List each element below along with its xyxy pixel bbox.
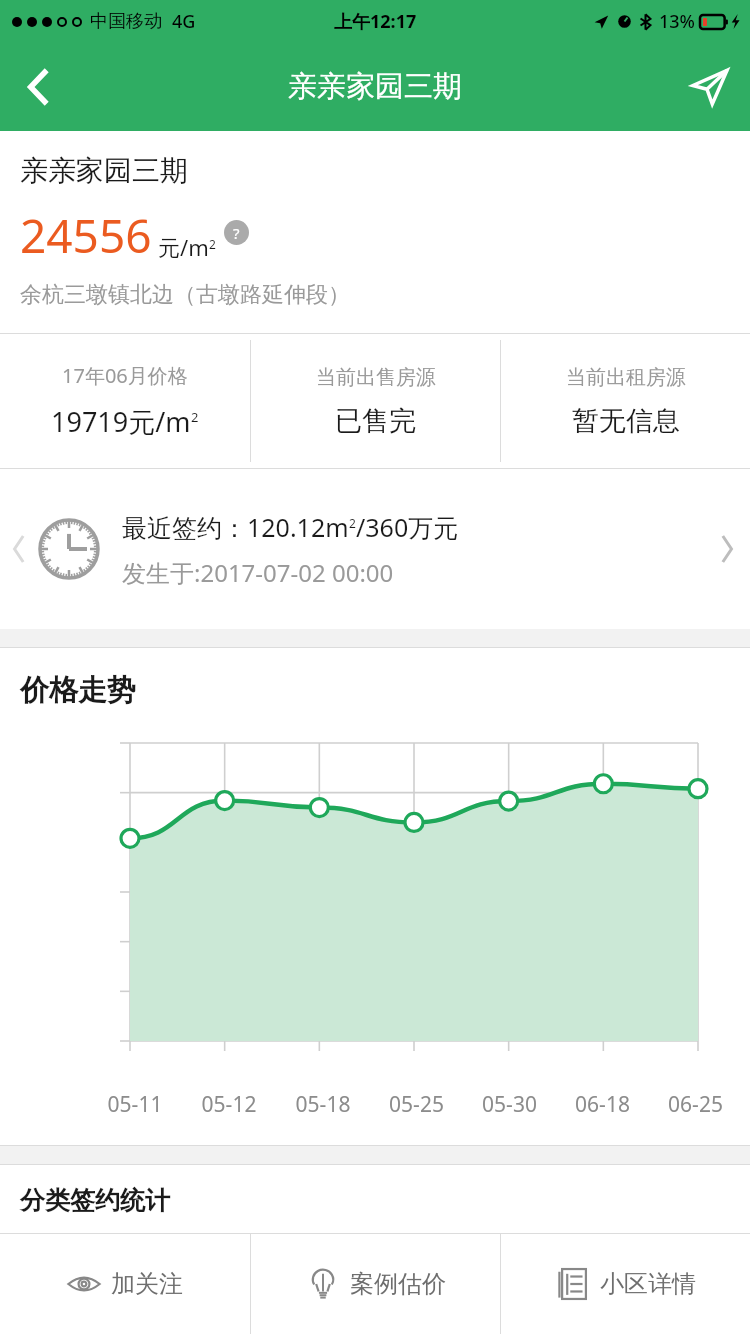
- staticText: ?: [233, 223, 240, 243]
- staticText: 05-12: [182, 1090, 276, 1119]
- staticText: 24556: [20, 204, 152, 267]
- staticText: 中国移动: [90, 10, 162, 33]
- button[interactable]: 最近签约：120.12m: [0, 469, 750, 629]
- staticText: 已售完: [335, 404, 416, 438]
- staticText: 元/m: [158, 232, 209, 262]
- button[interactable]: Price info: [224, 220, 249, 245]
- button[interactable]: 案例估价: [251, 1234, 500, 1334]
- staticText: 发生于:2017-07-02 00:00: [122, 556, 394, 589]
- staticText: 17年06月价格: [62, 362, 188, 389]
- staticText: 05-30: [463, 1090, 556, 1119]
- staticText: 13%: [659, 9, 695, 34]
- staticText: 加关注: [111, 1269, 183, 1299]
- staticText: 价格走势: [20, 672, 136, 709]
- staticText: 最近签约：120.12m: [122, 510, 349, 544]
- staticText: 05-11: [88, 1090, 182, 1119]
- staticText: 当前出租房源: [566, 365, 686, 390]
- staticText: 亲亲家园三期: [20, 153, 188, 188]
- staticText: 2: [209, 236, 216, 252]
- staticText: 05-18: [276, 1090, 370, 1119]
- button[interactable]: 加关注: [0, 1234, 250, 1334]
- staticText: 2: [191, 408, 199, 426]
- staticText: 余杭三墩镇北边（古墩路延伸段）: [20, 281, 350, 309]
- staticText: 06-18: [556, 1090, 649, 1119]
- button[interactable]: 小区详情: [501, 1234, 750, 1334]
- button[interactable]: 当前出售房源: [251, 334, 500, 468]
- button[interactable]: 17年06月价格: [0, 334, 250, 468]
- staticText: 05-25: [370, 1090, 463, 1119]
- staticText: 亲亲家园三期: [288, 68, 462, 105]
- staticText: 当前出售房源: [316, 365, 436, 390]
- button[interactable]: Back: [0, 42, 78, 131]
- staticText: 小区详情: [600, 1269, 696, 1299]
- staticText: 2: [349, 515, 356, 531]
- button[interactable]: 当前出租房源: [501, 334, 750, 468]
- staticText: 06-25: [649, 1090, 742, 1119]
- staticText: 上午12:17: [334, 9, 417, 34]
- staticText: 19719元/m: [51, 403, 191, 440]
- staticText: 分类签约统计: [20, 1185, 170, 1216]
- staticText: 案例估价: [350, 1269, 446, 1299]
- button[interactable]: Share: [670, 42, 750, 131]
- staticText: 暂无信息: [572, 404, 680, 438]
- staticText: 4G: [172, 9, 196, 34]
- staticText: /360万元: [356, 510, 459, 544]
